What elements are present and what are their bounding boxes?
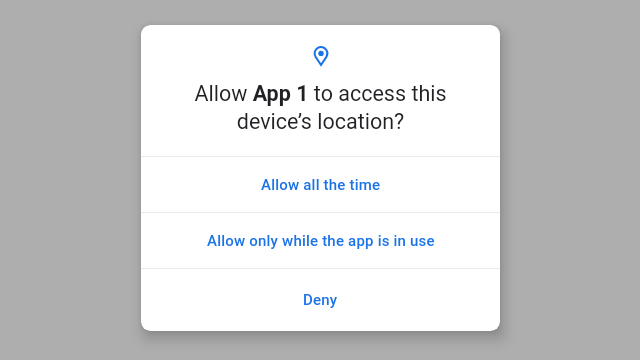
staticText: Deny (303, 291, 338, 309)
button[interactable]: Allow all the time (141, 157, 500, 212)
staticText: Allow all the time (261, 176, 381, 194)
button[interactable]: Allow only while the app is in use (141, 213, 500, 268)
button[interactable]: Deny (141, 269, 500, 331)
staticText: Allow only while the app is in use (207, 232, 435, 250)
staticText: Allow App 1 to access this device’s loca… (141, 79, 500, 135)
